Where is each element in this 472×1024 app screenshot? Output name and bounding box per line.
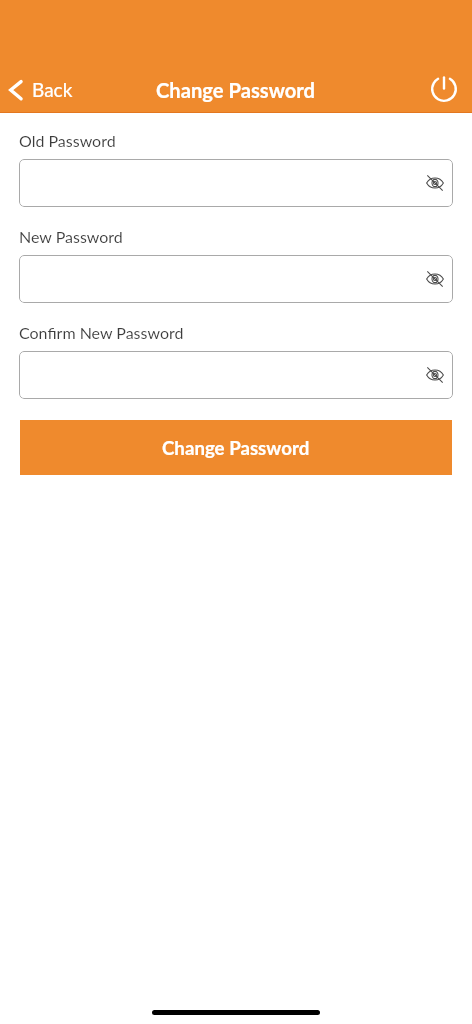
button[interactable]: Back (5, 78, 73, 101)
button[interactable]: Log out (426, 71, 462, 107)
button[interactable]: Change Password (20, 420, 452, 475)
staticText: Confirm New Password (19, 323, 184, 342)
button[interactable]: Show password (19, 351, 453, 399)
staticText: New Password (19, 227, 123, 246)
button[interactable]: Show password (421, 361, 449, 389)
staticText: Change Password (162, 437, 310, 459)
button[interactable]: Show password (19, 159, 453, 207)
staticText: Old Password (19, 131, 116, 150)
staticText: Back (32, 78, 73, 101)
button[interactable]: Show password (421, 265, 449, 293)
button[interactable]: Show password (19, 255, 453, 303)
staticText: Change Password (156, 78, 316, 102)
button[interactable]: Show password (421, 169, 449, 197)
